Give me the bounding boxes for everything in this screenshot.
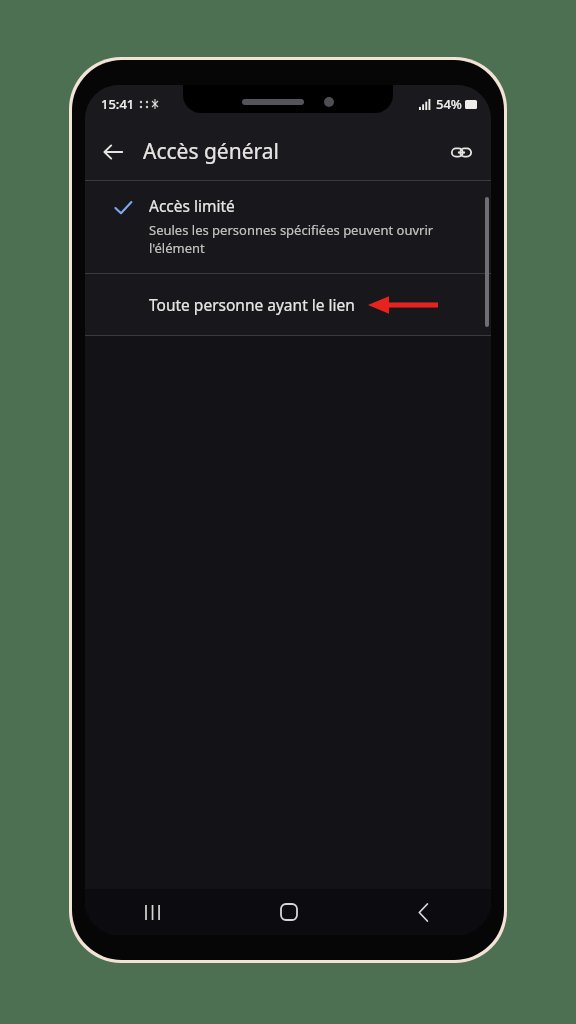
button[interactable]: Retour	[356, 889, 491, 935]
button[interactable]: Toute personne ayant le lien	[85, 274, 491, 335]
staticText: Toute personne ayant le lien	[149, 294, 355, 315]
button[interactable]: Retour	[91, 130, 135, 174]
staticText: Seules les personnes spécifiées peuvent …	[149, 221, 475, 257]
staticText: 15:41	[101, 95, 135, 113]
button[interactable]: Applications récentes	[85, 889, 221, 935]
staticText: 54%	[436, 95, 462, 113]
button[interactable]: Accueil	[221, 889, 356, 935]
button[interactable]: Copier le lien	[439, 130, 483, 174]
button[interactable]: Accès limité	[85, 181, 491, 273]
staticText: Accès général	[143, 137, 279, 166]
staticText: Accès limité	[149, 195, 235, 216]
